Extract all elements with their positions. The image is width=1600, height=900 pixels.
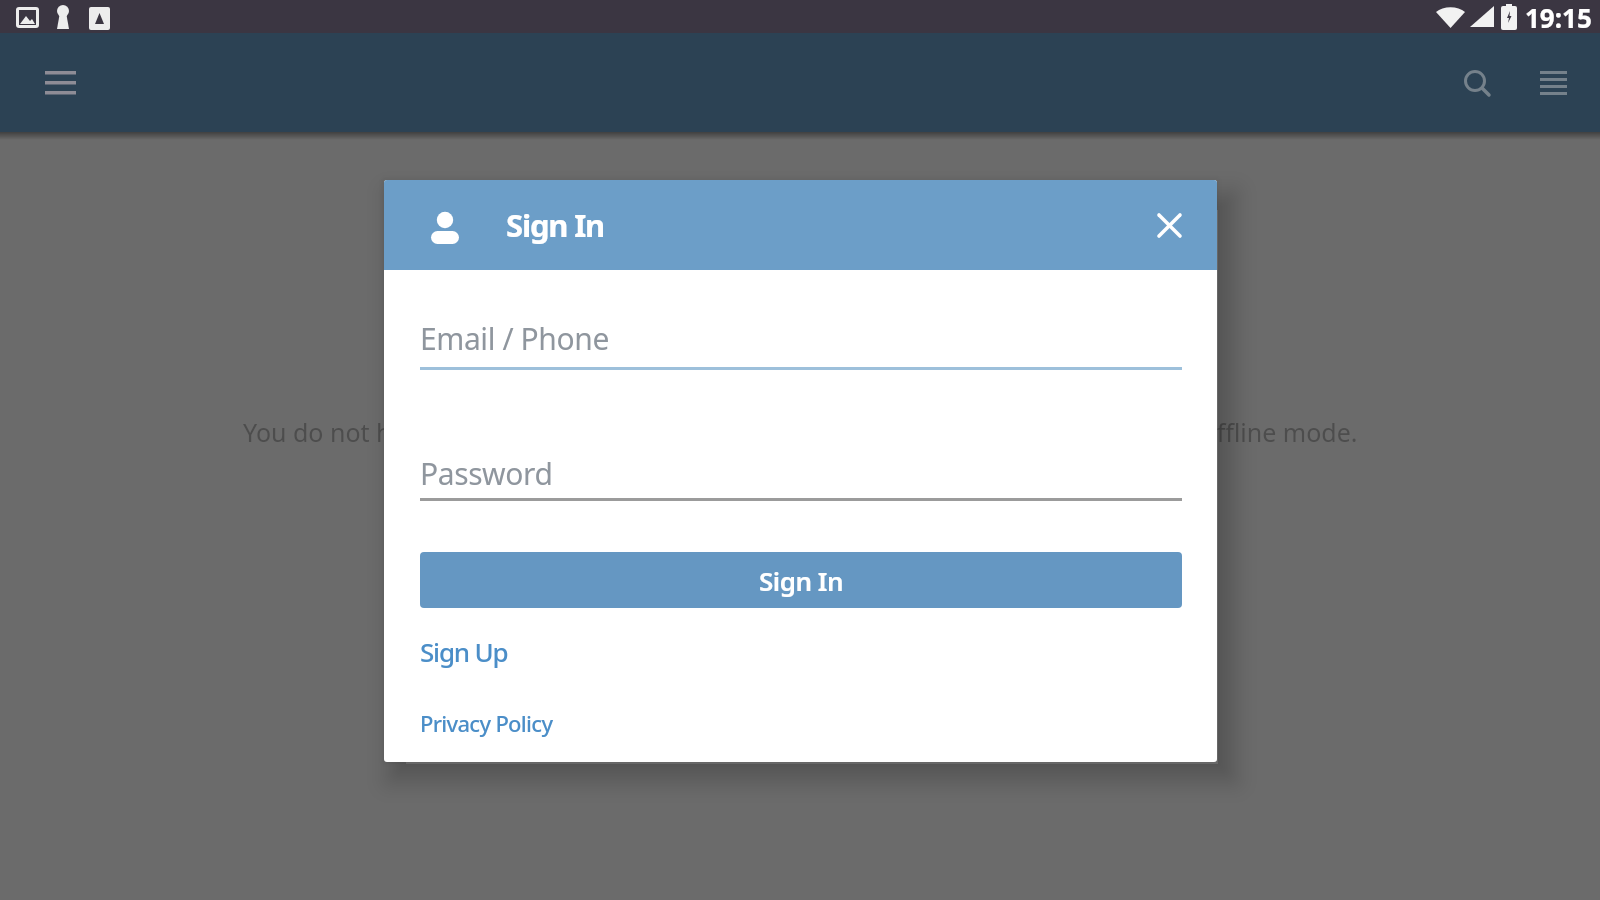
- staticText: Sign In: [759, 563, 843, 598]
- staticText: You do not have any bookmarks saved. Ple…: [243, 415, 1358, 449]
- button[interactable]: [1147, 203, 1191, 247]
- button[interactable]: Email / Phone: [420, 300, 1182, 370]
- button[interactable]: Privacy Policy: [420, 708, 553, 738]
- button[interactable]: Sign In: [420, 552, 1182, 608]
- staticText: Password: [420, 453, 553, 494]
- staticText: Email / Phone: [420, 318, 609, 359]
- staticText: Sign Up: [420, 634, 508, 669]
- button[interactable]: [1528, 58, 1578, 108]
- button[interactable]: Sign Up: [420, 634, 508, 669]
- button[interactable]: Password: [420, 435, 1182, 501]
- button[interactable]: [1452, 58, 1502, 108]
- staticText: Privacy Policy: [420, 708, 553, 738]
- staticText: Sign In: [506, 204, 604, 246]
- button[interactable]: [32, 55, 88, 111]
- staticText: 19:15: [1525, 0, 1592, 33]
